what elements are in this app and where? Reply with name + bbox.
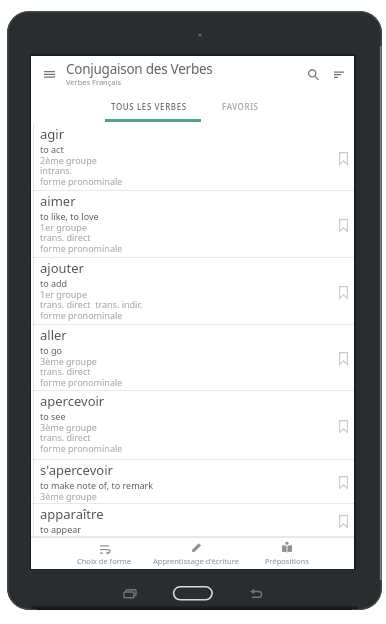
staticText: aller [40,326,67,344]
button[interactable]: TOUS LES VERBES [101,97,197,123]
staticText: to make note of, to remark [40,479,154,491]
button[interactable]: agir [31,124,354,191]
staticText: 3ème groupe [40,421,97,433]
staticText: ajouter [40,259,84,277]
button[interactable] [336,149,350,167]
staticText: to add [40,277,68,289]
staticText: Conjugaison des Verbes [66,60,213,78]
staticText: Prépositions [265,556,309,566]
staticText: 3ème groupe [40,355,97,367]
staticText: 1er groupe [40,221,87,233]
staticText: forme pronominale [40,442,123,454]
staticText: to like, to love [40,210,99,222]
button[interactable]: aller [31,325,354,391]
staticText: TOUS LES VERBES [111,101,187,112]
button[interactable]: Prépositions [241,539,332,569]
staticText: to go [40,344,63,356]
button[interactable]: s'apercevoir [31,460,354,504]
staticText: to act [40,143,64,155]
button[interactable] [336,417,350,435]
button[interactable]: Apprentissage d'écriture [150,539,241,569]
staticText: agir [40,125,65,143]
staticText: to appear [40,523,81,535]
staticText: aimer [40,192,76,210]
button[interactable]: apercevoir [31,391,354,460]
button[interactable] [336,216,350,234]
button[interactable]: aimer [31,191,354,258]
staticText: 1er groupe [40,288,87,300]
staticText: forme pronominale [40,376,123,388]
staticText: forme pronominale [40,309,123,321]
button[interactable]: ajouter [31,258,354,325]
button[interactable] [336,512,350,530]
button[interactable] [303,64,323,84]
button[interactable] [336,473,350,491]
staticText: to see [40,410,66,422]
button[interactable]: Choix de forme [59,539,150,569]
button[interactable] [336,283,350,301]
button[interactable] [336,349,350,367]
staticText: apparaître [40,505,104,523]
staticText: trans. direct [40,365,91,377]
staticText: FAVORIS [222,101,259,112]
button[interactable]: FAVORIS [201,97,279,123]
staticText: trans. direct trans. indir. [40,298,143,310]
staticText: 2ème groupe [40,154,97,166]
staticText: Apprentissage d'écriture [153,556,239,566]
staticText: 3ème groupe [40,490,97,502]
button[interactable] [40,67,62,83]
button[interactable]: apparaître [31,504,354,537]
staticText: Verbes Français [66,77,122,87]
staticText: intrans. [40,164,73,176]
staticText: s'apercevoir [40,461,113,479]
staticText: forme pronominale [40,242,123,254]
staticText: forme pronominale [40,175,123,187]
staticText: trans. direct [40,231,91,243]
staticText: trans. direct [40,431,91,443]
button[interactable] [329,64,351,84]
staticText: apercevoir [40,392,105,410]
staticText: Choix de forme [77,556,132,566]
